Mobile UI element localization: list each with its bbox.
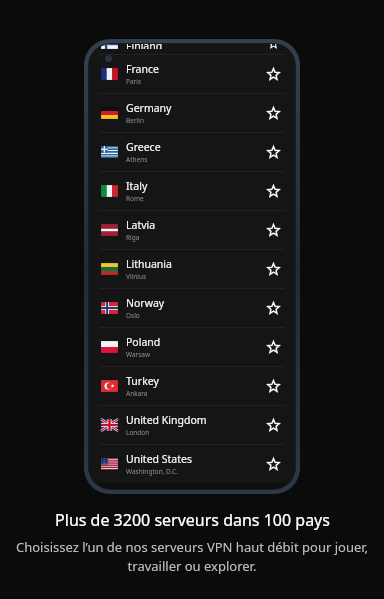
staticText: Riga xyxy=(126,233,140,242)
button[interactable]: Favorite Italy xyxy=(263,181,283,201)
button[interactable]: Favorite Germany xyxy=(263,103,283,123)
button[interactable]: United Kingdom xyxy=(89,406,295,444)
staticText: Ankara xyxy=(126,389,148,398)
button[interactable]: Turkey xyxy=(89,367,295,405)
button[interactable]: Favorite United Kingdom xyxy=(263,415,283,435)
staticText: Washington, D.C. xyxy=(126,467,178,476)
button[interactable]: Finland xyxy=(101,44,283,49)
staticText: United States xyxy=(126,452,192,466)
button[interactable]: France xyxy=(89,55,295,93)
staticText: Rome xyxy=(126,194,144,203)
staticText: France xyxy=(126,62,159,76)
staticText: United Kingdom xyxy=(126,413,207,427)
button[interactable]: Favorite Greece xyxy=(263,142,283,162)
button[interactable]: Latvia xyxy=(89,211,295,249)
button[interactable]: Favorite Turkey xyxy=(263,376,283,396)
staticText: Warsaw xyxy=(126,350,151,359)
staticText: Turkey xyxy=(126,374,159,388)
button[interactable]: Favorite Poland xyxy=(263,337,283,357)
button[interactable]: Favorite United States xyxy=(263,454,283,474)
staticText: Oslo xyxy=(126,311,140,320)
staticText: Vilnius xyxy=(126,272,147,281)
button[interactable]: Italy xyxy=(89,172,295,210)
staticText: Finland xyxy=(126,44,163,49)
button[interactable]: Poland xyxy=(89,328,295,366)
button[interactable]: Favorite Norway xyxy=(263,298,283,318)
staticText: London xyxy=(126,428,150,437)
staticText: Germany xyxy=(126,101,172,115)
staticText: Lithuania xyxy=(126,257,172,271)
staticText: Paris xyxy=(126,77,142,86)
staticText: Italy xyxy=(126,179,148,193)
button[interactable]: Greece xyxy=(89,133,295,171)
button[interactable]: United States xyxy=(89,445,295,483)
staticText: Poland xyxy=(126,335,161,349)
button[interactable]: Norway xyxy=(89,289,295,327)
staticText: Choisissez l’un de nos serveurs VPN haut… xyxy=(14,538,370,575)
button[interactable]: Favorite Latvia xyxy=(263,220,283,240)
staticText: Norway xyxy=(126,296,165,310)
staticText: Athens xyxy=(126,155,148,164)
button[interactable]: Favorite Lithuania xyxy=(263,259,283,279)
button[interactable]: Lithuania xyxy=(89,250,295,288)
button[interactable]: Germany xyxy=(89,94,295,132)
staticText: Greece xyxy=(126,140,161,154)
button[interactable]: Favorite France xyxy=(263,64,283,84)
staticText: Latvia xyxy=(126,218,156,232)
staticText: Berlin xyxy=(126,116,144,125)
staticText: Plus de 3200 serveurs dans 100 pays xyxy=(55,509,330,531)
